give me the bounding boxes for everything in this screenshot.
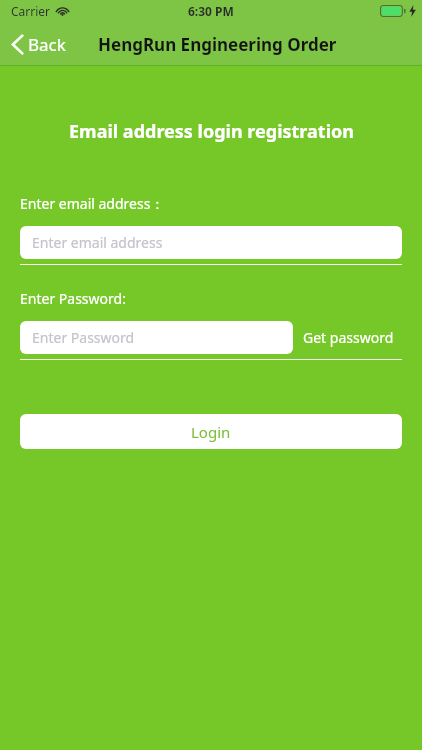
- staticText: Enter email address：: [20, 194, 165, 213]
- button[interactable]: Login: [20, 414, 402, 449]
- staticText: Login: [191, 422, 231, 442]
- button[interactable]: Get password: [293, 321, 394, 354]
- button[interactable]: Back: [0, 27, 80, 62]
- staticText: Enter Password:: [20, 289, 126, 308]
- staticText: Enter email address: [32, 233, 163, 252]
- staticText: HengRun Engineering Order: [98, 33, 337, 56]
- staticText: 6:30 PM: [188, 3, 234, 19]
- staticText: Get password: [303, 328, 394, 347]
- staticText: Carrier: [11, 3, 51, 19]
- staticText: Enter Password: [32, 328, 135, 347]
- staticText: Back: [28, 33, 66, 56]
- button[interactable]: Enter Password: [20, 321, 293, 354]
- button[interactable]: Enter email address: [20, 226, 402, 259]
- staticText: Email address login registration: [69, 119, 354, 143]
